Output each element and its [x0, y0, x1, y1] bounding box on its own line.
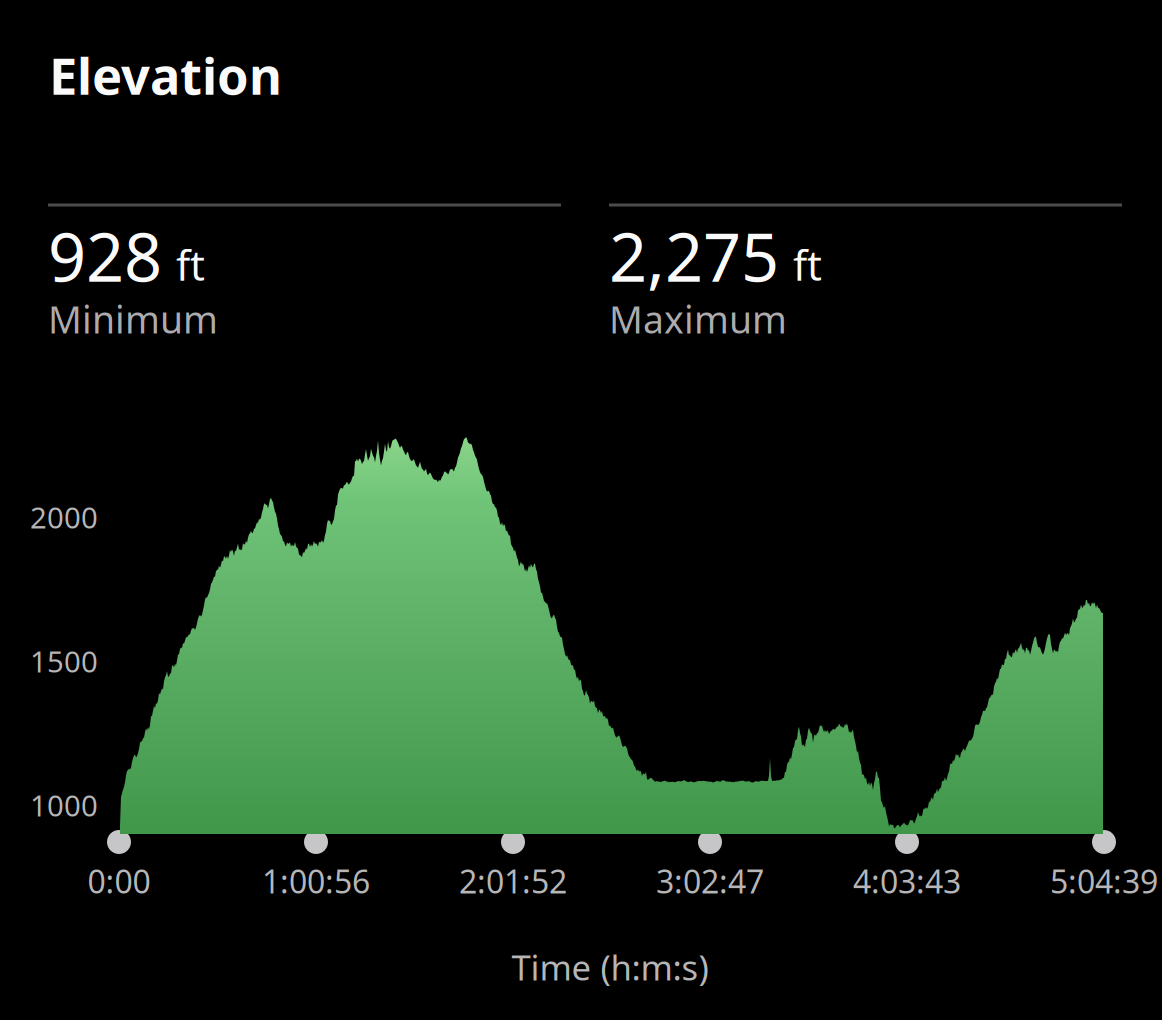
staticText: ft — [793, 237, 822, 292]
button[interactable]: 928 — [48, 203, 561, 348]
staticText: Time (h:m:s) — [511, 944, 708, 990]
staticText: 5:04:39 — [1050, 860, 1158, 902]
staticText: 2,275 — [609, 212, 779, 300]
staticText: 1000 — [30, 785, 98, 824]
button[interactable]: 2,275 — [609, 203, 1122, 348]
staticText: 4:03:43 — [853, 860, 961, 902]
staticText: 928 — [48, 212, 162, 300]
staticText: 2000 — [30, 497, 98, 536]
staticText: Elevation — [49, 41, 282, 109]
staticText: 2:01:52 — [459, 860, 567, 902]
staticText: 1:00:56 — [262, 860, 370, 902]
staticText: ft — [176, 237, 205, 292]
staticText: Minimum — [48, 294, 218, 344]
button[interactable]: Elevation chart, 0:00 to 5:04:39 — [0, 0, 1162, 1020]
staticText: 1500 — [30, 641, 98, 680]
staticText: Maximum — [609, 294, 787, 344]
staticText: 3:02:47 — [656, 860, 764, 902]
staticText: 0:00 — [87, 860, 150, 902]
